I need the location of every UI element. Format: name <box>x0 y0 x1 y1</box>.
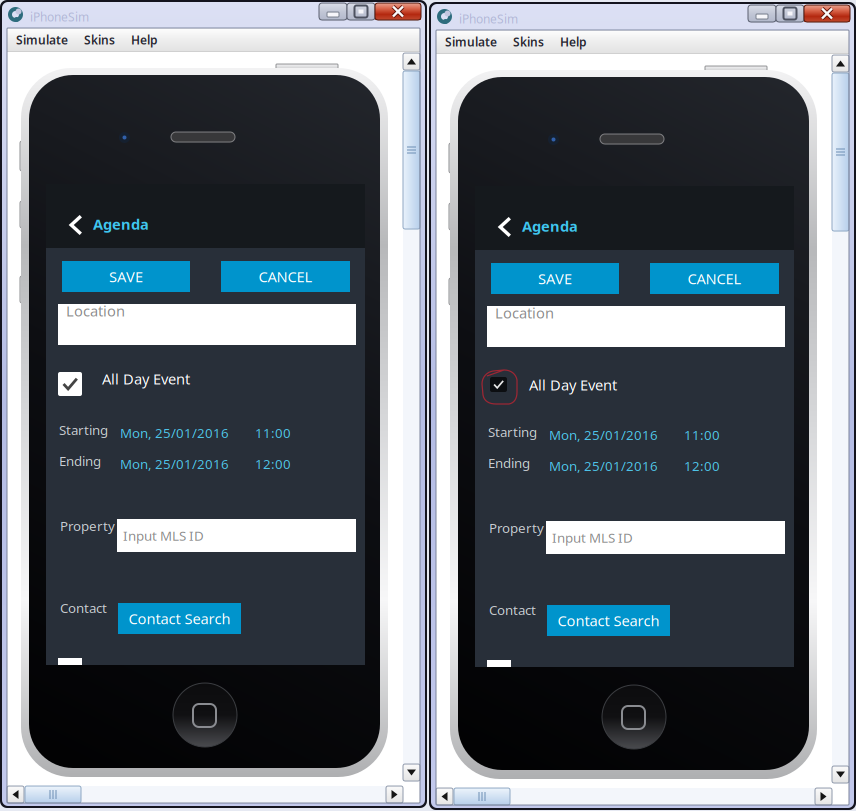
staticText: Skins <box>513 34 544 50</box>
staticText: Input MLS ID <box>123 527 204 544</box>
staticText: Mon, 25/01/2016 <box>120 424 229 442</box>
staticText: Ending <box>488 454 530 472</box>
button[interactable]: Simulate <box>16 32 68 48</box>
staticText: Ending <box>59 452 101 470</box>
button[interactable]: SAVE <box>491 263 619 294</box>
staticText: Help <box>560 34 587 50</box>
button[interactable]: Scroll down <box>832 766 849 783</box>
button[interactable]: Help <box>131 32 158 48</box>
staticText: Simulate <box>16 32 68 48</box>
staticText: 12:00 <box>255 455 291 473</box>
staticText: Contact <box>489 601 536 619</box>
button[interactable]: Mon, 25/01/2016 <box>549 426 658 444</box>
staticText: 12:00 <box>684 457 720 475</box>
staticText: Mon, 25/01/2016 <box>549 457 658 475</box>
button[interactable]: CANCEL <box>221 261 350 292</box>
button[interactable]: Minimize <box>748 5 776 22</box>
staticText: Agenda <box>93 214 149 234</box>
button[interactable]: Help <box>560 34 587 50</box>
staticText: Starting <box>488 423 537 441</box>
staticText: Skins <box>84 32 115 48</box>
button[interactable]: Close <box>804 5 850 22</box>
staticText: Property <box>60 517 115 535</box>
button[interactable]: All Day Event <box>58 372 82 396</box>
button[interactable]: Scroll left <box>7 786 24 803</box>
button[interactable]: Contact Search <box>118 603 241 634</box>
button[interactable]: Maximize <box>347 3 375 20</box>
button[interactable]: Maximize <box>776 5 804 22</box>
button[interactable]: Back <box>60 207 92 243</box>
staticText: Property <box>489 519 544 537</box>
staticText: Input MLS ID <box>552 529 633 546</box>
staticText: All Day Event <box>102 369 190 388</box>
staticText: Location <box>495 303 554 322</box>
button[interactable]: 12:00 <box>255 455 291 473</box>
button[interactable]: Skins <box>84 32 115 48</box>
staticText: Contact Search <box>557 611 659 630</box>
button[interactable]: Agenda <box>522 215 577 237</box>
button[interactable]: CANCEL <box>650 263 779 294</box>
staticText: All Day Event <box>529 375 617 394</box>
staticText: iPhoneSim <box>30 9 89 25</box>
staticText: Help <box>131 32 158 48</box>
button[interactable]: Simulate <box>445 34 497 50</box>
staticText: Contact <box>60 599 107 617</box>
staticText: 11:00 <box>684 426 720 444</box>
button[interactable]: All Day Event <box>490 377 507 392</box>
staticText: Contact Search <box>128 609 230 628</box>
button[interactable]: Mon, 25/01/2016 <box>120 455 229 473</box>
staticText: Simulate <box>445 34 497 50</box>
staticText: Mon, 25/01/2016 <box>549 426 658 444</box>
staticText: iPhoneSim <box>459 11 518 27</box>
button[interactable]: Scroll up <box>832 55 849 72</box>
staticText: Agenda <box>522 216 578 236</box>
staticText: Starting <box>59 421 108 439</box>
staticText: CANCEL <box>258 267 312 286</box>
button[interactable]: 12:00 <box>684 457 720 475</box>
button[interactable]: Minimize <box>319 3 347 20</box>
button[interactable]: Back <box>489 209 521 245</box>
button[interactable]: Scroll down <box>403 764 420 781</box>
button[interactable]: 11:00 <box>255 424 291 442</box>
button[interactable]: Scroll up <box>403 53 420 70</box>
staticText: 11:00 <box>255 424 291 442</box>
button[interactable]: SAVE <box>62 261 190 292</box>
button[interactable]: Mon, 25/01/2016 <box>120 424 229 442</box>
staticText: CANCEL <box>687 269 741 288</box>
button[interactable]: Close <box>375 3 421 20</box>
button[interactable]: Agenda <box>93 213 148 235</box>
button[interactable]: Contact Search <box>547 605 670 636</box>
button[interactable]: Mon, 25/01/2016 <box>549 457 658 475</box>
staticText: Location <box>66 301 125 320</box>
staticText: Mon, 25/01/2016 <box>120 455 229 473</box>
button[interactable]: Scroll left <box>436 788 453 805</box>
staticText: SAVE <box>538 269 572 288</box>
staticText: SAVE <box>109 267 143 286</box>
button[interactable]: Scroll right <box>386 786 403 803</box>
button[interactable]: Skins <box>513 34 544 50</box>
button[interactable]: 11:00 <box>684 426 720 444</box>
button[interactable]: Scroll right <box>815 788 832 805</box>
